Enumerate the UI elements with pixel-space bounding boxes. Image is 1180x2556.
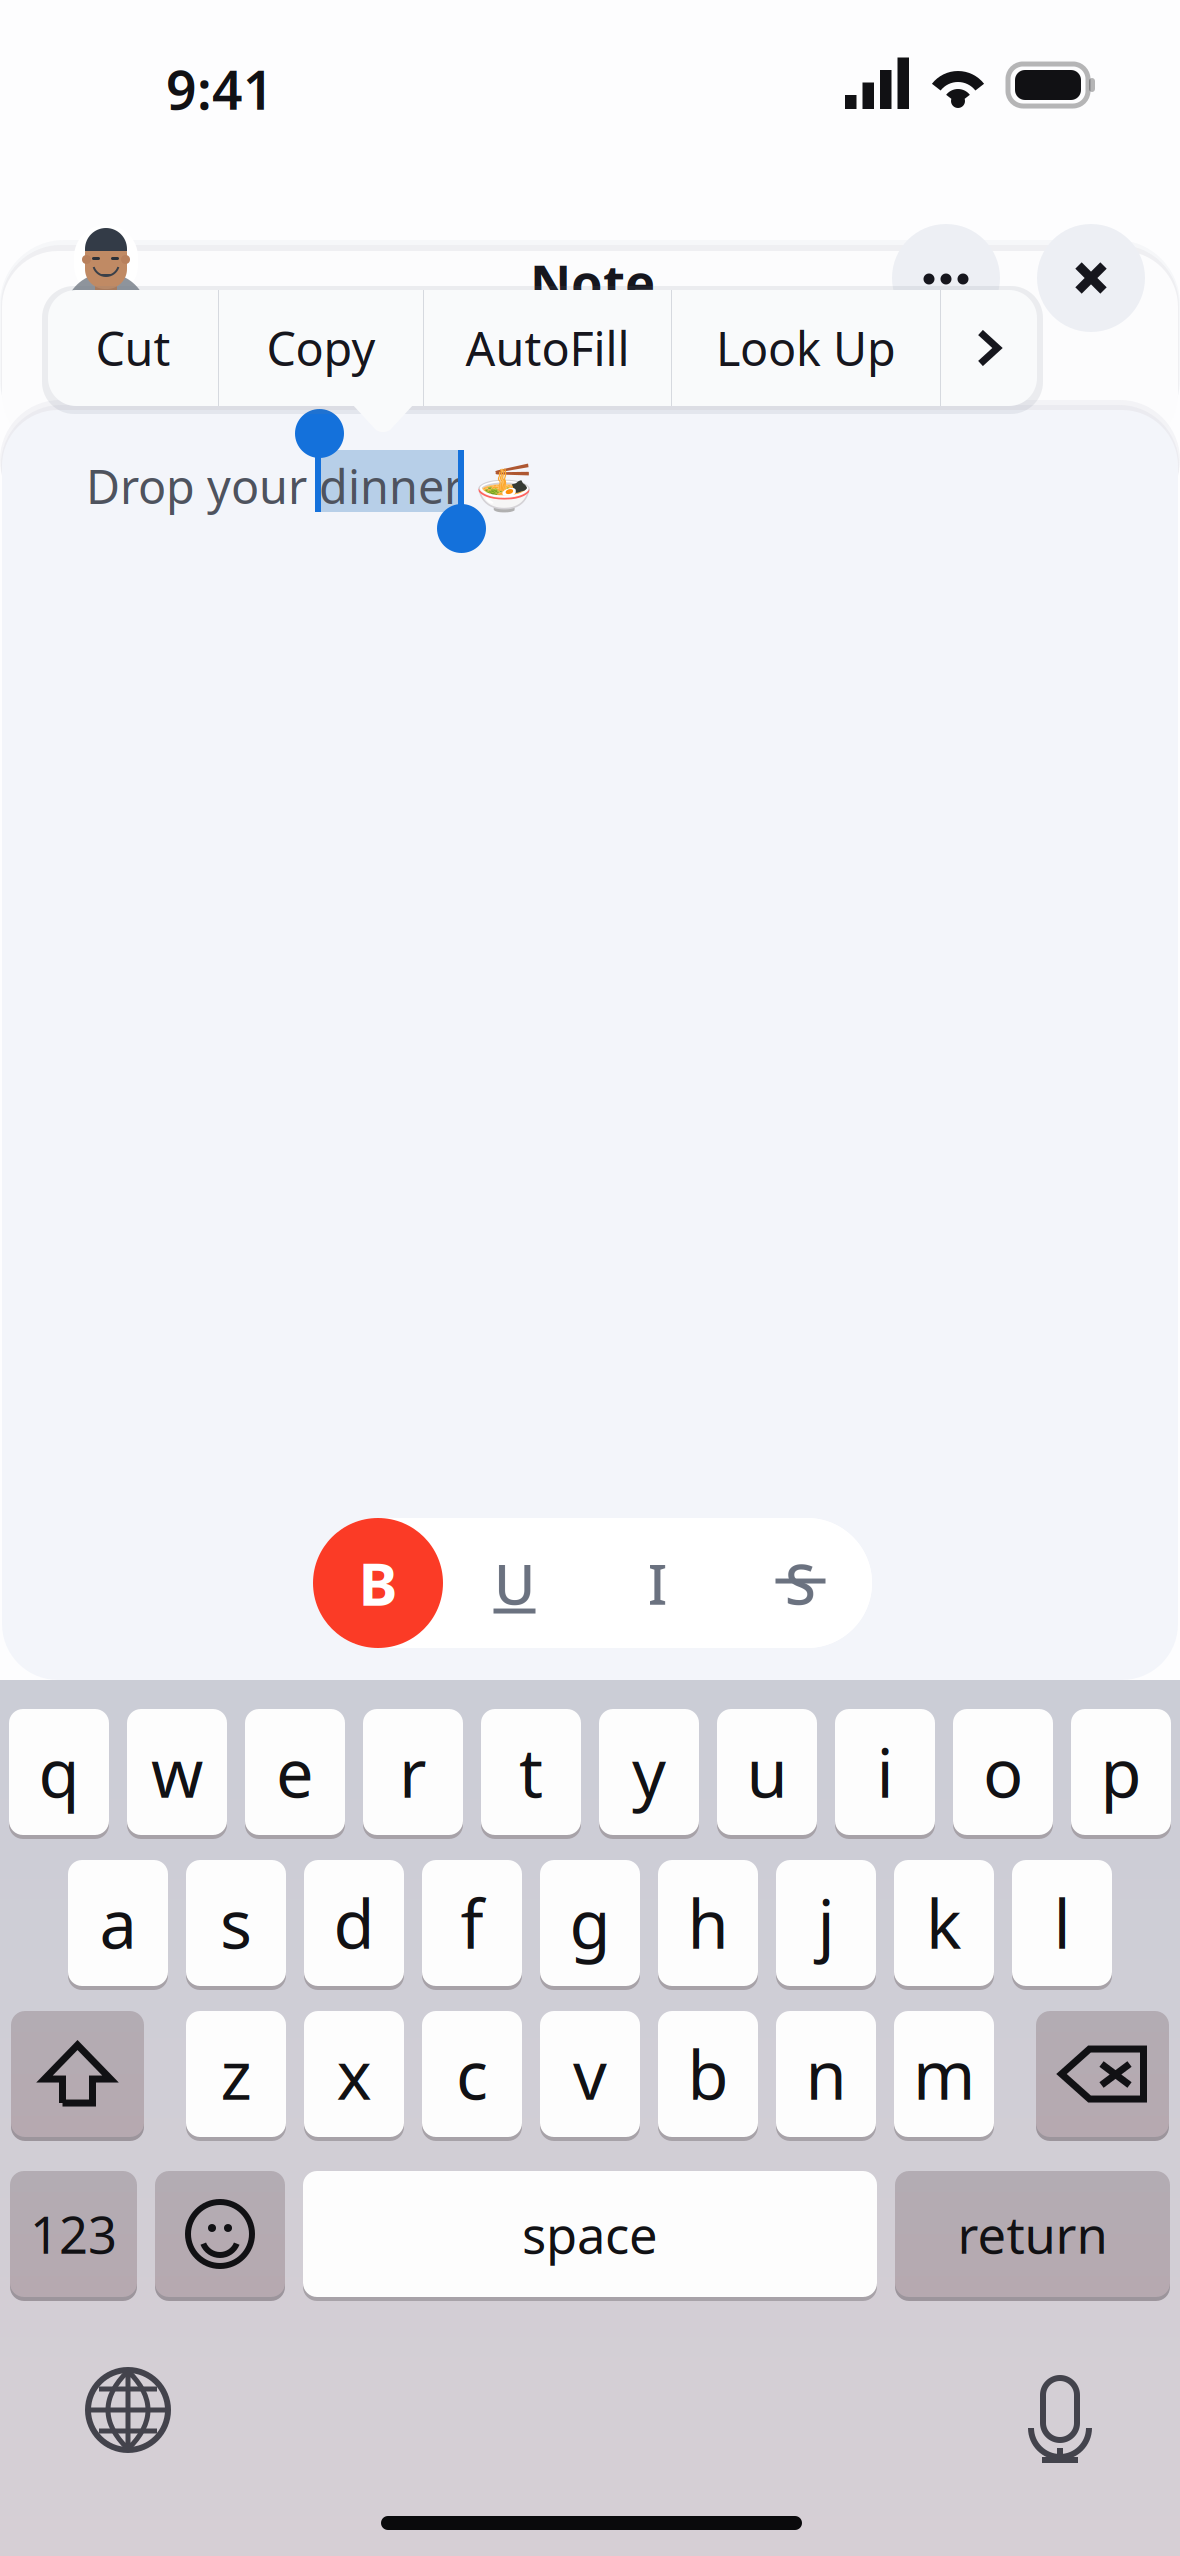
staticText: 9:41	[166, 54, 274, 124]
button[interactable]: Copy	[219, 290, 423, 406]
staticText: r	[399, 1728, 427, 1816]
button[interactable]: a	[68, 1860, 168, 1986]
button[interactable]: g	[540, 1860, 640, 1986]
button[interactable]: n	[776, 2011, 876, 2137]
button[interactable]: Account	[66, 225, 146, 305]
staticText: f	[460, 1879, 483, 1967]
button[interactable]: Emoji keyboard	[155, 2171, 285, 2297]
button[interactable]: z	[186, 2011, 286, 2137]
button[interactable]: More options	[892, 224, 1000, 332]
staticText: p	[1100, 1728, 1141, 1816]
button[interactable]: Underline	[443, 1518, 586, 1648]
staticText: k	[926, 1879, 962, 1967]
staticText: g	[569, 1879, 610, 1967]
staticText: n	[805, 2030, 846, 2118]
staticText: c	[456, 2030, 488, 2118]
button[interactable]: Close	[1037, 224, 1145, 332]
button[interactable]: i	[835, 1709, 935, 1835]
staticText: e	[276, 1728, 314, 1816]
button[interactable]: t	[481, 1709, 581, 1835]
button[interactable]: AutoFill	[424, 290, 671, 406]
staticText: l	[1053, 1879, 1070, 1967]
button[interactable]: Next keyboard	[88, 2370, 168, 2450]
button[interactable]: d	[304, 1860, 404, 1986]
staticText: w	[151, 1728, 203, 1816]
button[interactable]: Strikethrough	[729, 1518, 872, 1648]
staticText: z	[220, 2030, 251, 2118]
staticText: Copy	[266, 317, 375, 379]
button[interactable]: space	[303, 2171, 877, 2297]
button[interactable]: e	[245, 1709, 345, 1835]
button[interactable]: r	[363, 1709, 463, 1835]
button[interactable]: y	[599, 1709, 699, 1835]
button[interactable]: Cut	[48, 290, 218, 406]
staticText: u	[746, 1728, 787, 1816]
staticText: U	[494, 1546, 535, 1620]
staticText: return	[957, 2200, 1107, 2268]
button[interactable]: Bold	[313, 1518, 443, 1648]
button[interactable]: Italic	[586, 1518, 729, 1648]
button[interactable]: h	[658, 1860, 758, 1986]
button[interactable]: Return	[895, 2171, 1170, 2297]
staticText: t	[519, 1728, 543, 1816]
staticText: 123	[30, 2200, 117, 2268]
button[interactable]: p	[1071, 1709, 1171, 1835]
staticText: o	[983, 1728, 1023, 1816]
button[interactable]: v	[540, 2011, 640, 2137]
button[interactable]: k	[894, 1860, 994, 1986]
staticText: b	[687, 2030, 728, 2118]
button[interactable]: s	[186, 1860, 286, 1986]
staticText: Look Up	[716, 317, 896, 379]
staticText: d	[333, 1879, 374, 1967]
staticText: Note	[530, 248, 655, 316]
staticText: Cut	[95, 317, 170, 379]
button[interactable]: More actions	[941, 290, 1037, 406]
staticText: y	[632, 1728, 666, 1816]
staticText: m	[913, 2030, 975, 2118]
button[interactable]: Dictation	[1010, 2366, 1090, 2452]
staticText: AutoFill	[465, 317, 629, 379]
button[interactable]: o	[953, 1709, 1053, 1835]
staticText: v	[573, 2030, 607, 2118]
button[interactable]: q	[9, 1709, 109, 1835]
staticText: I	[647, 1546, 667, 1620]
button[interactable]: c	[422, 2011, 522, 2137]
staticText: i	[876, 1728, 893, 1816]
staticText: q	[38, 1728, 79, 1816]
staticText: a	[99, 1879, 136, 1967]
staticText: s	[220, 1879, 252, 1967]
button[interactable]: Shift	[11, 2011, 144, 2137]
staticText: x	[336, 2030, 371, 2118]
button[interactable]: b	[658, 2011, 758, 2137]
button[interactable]: m	[894, 2011, 994, 2137]
staticText: j	[817, 1879, 834, 1967]
button[interactable]: j	[776, 1860, 876, 1986]
staticText: S	[785, 1546, 816, 1620]
button[interactable]: u	[717, 1709, 817, 1835]
staticText: h	[687, 1879, 728, 1967]
staticText: B	[358, 1544, 397, 1622]
button[interactable]: Delete	[1036, 2011, 1169, 2137]
button[interactable]: Look Up	[672, 290, 940, 406]
button[interactable]: w	[127, 1709, 227, 1835]
button[interactable]: Numbers	[10, 2171, 137, 2297]
button[interactable]: x	[304, 2011, 404, 2137]
button[interactable]: l	[1012, 1860, 1112, 1986]
staticText: Drop your dinner 🍜	[86, 455, 533, 517]
staticText: space	[522, 2200, 658, 2268]
button[interactable]: f	[422, 1860, 522, 1986]
